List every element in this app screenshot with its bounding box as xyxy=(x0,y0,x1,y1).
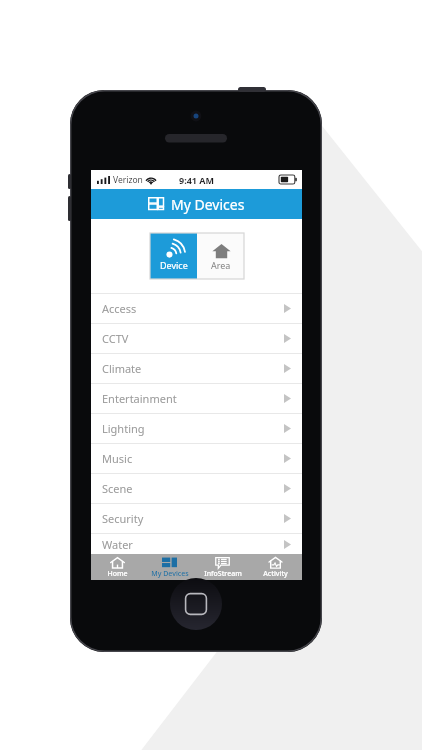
staticText: CCTV xyxy=(102,331,129,346)
button[interactable]: My Devices xyxy=(91,189,302,219)
staticText: Verizon xyxy=(113,174,143,186)
staticText: InfoStream xyxy=(204,569,242,579)
staticText: Climate xyxy=(102,361,142,376)
button[interactable]: Entertainment xyxy=(91,384,302,413)
staticText: Activity xyxy=(263,569,288,579)
button[interactable]: CCTV xyxy=(91,324,302,353)
staticText: 9:41 AM xyxy=(179,174,215,186)
staticText: Entertainment xyxy=(102,391,177,406)
button[interactable]: Scene xyxy=(91,474,302,503)
button[interactable]: Area xyxy=(197,233,244,279)
button[interactable]: Access xyxy=(91,294,302,323)
button[interactable]: Climate xyxy=(91,354,302,383)
button[interactable]: Device xyxy=(150,233,197,279)
staticText: Scene xyxy=(102,481,133,496)
staticText: Home xyxy=(107,569,128,579)
button[interactable]: Home xyxy=(91,554,143,580)
staticText: Music xyxy=(102,451,133,466)
staticText: My Devices xyxy=(171,195,245,214)
staticText: Area xyxy=(211,259,231,271)
button[interactable]: Water xyxy=(91,534,302,554)
staticText: Water xyxy=(102,537,133,552)
staticText: My Devices xyxy=(151,569,189,579)
button[interactable]: Security xyxy=(91,504,302,533)
button[interactable]: InfoStream xyxy=(196,554,249,580)
staticText: Security xyxy=(102,511,144,526)
button[interactable]: Lighting xyxy=(91,414,302,443)
button[interactable]: Activity xyxy=(249,554,302,580)
staticText: Access xyxy=(102,301,137,316)
staticText: Lighting xyxy=(102,421,145,436)
button[interactable]: Music xyxy=(91,444,302,473)
button[interactable]: My Devices xyxy=(143,554,196,580)
staticText: Device xyxy=(160,259,188,271)
